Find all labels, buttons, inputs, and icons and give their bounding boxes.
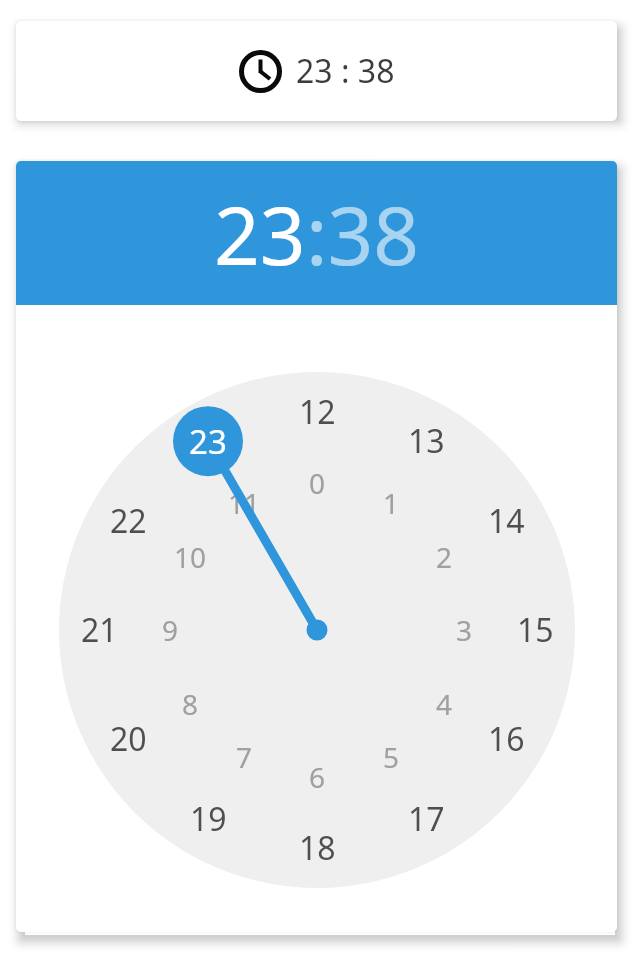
staticText: 21 <box>81 608 118 652</box>
staticText: 7 <box>236 738 253 776</box>
staticText: 11 <box>228 484 261 522</box>
staticText: 23 : 38 <box>296 49 395 93</box>
staticText: 16 <box>488 717 525 761</box>
staticText: 15 <box>517 608 554 652</box>
staticText: 23 <box>214 179 306 288</box>
staticText: 17 <box>408 797 445 841</box>
staticText: 19 <box>190 797 227 841</box>
staticText: 23 <box>189 419 227 464</box>
staticText: 5 <box>383 738 400 776</box>
staticText: 18 <box>299 826 336 870</box>
staticText: 22 <box>110 499 147 543</box>
button[interactable]: 23 : 38 <box>16 21 617 121</box>
staticText: 6 <box>309 758 326 796</box>
staticText: 4 <box>436 685 453 723</box>
staticText: 1 <box>383 484 400 522</box>
staticText: 9 <box>162 611 179 649</box>
button[interactable]: 12 <box>43 356 591 904</box>
staticText: 20 <box>110 717 147 761</box>
staticText: 12 <box>299 390 336 434</box>
staticText: 13 <box>408 419 445 463</box>
staticText: 2 <box>436 538 453 576</box>
staticText: 0 <box>309 464 326 502</box>
staticText: 8 <box>182 685 199 723</box>
staticText: 14 <box>488 499 525 543</box>
staticText: :38 <box>306 179 419 288</box>
staticText: 10 <box>174 538 207 576</box>
button[interactable]: 23 <box>16 161 617 305</box>
staticText: 3 <box>456 611 473 649</box>
